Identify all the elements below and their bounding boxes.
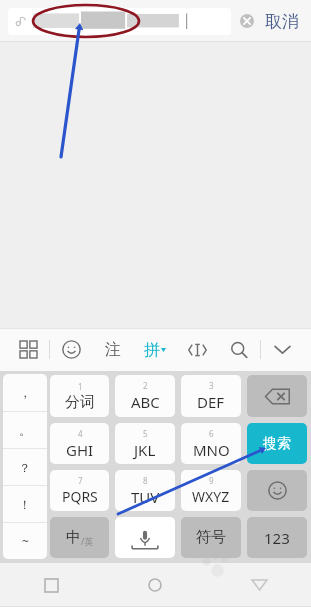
- button[interactable]: 拼: [134, 328, 176, 371]
- staticText: 123: [264, 528, 290, 548]
- button[interactable]: Backspace: [247, 375, 307, 417]
- staticText: 搜索: [263, 435, 291, 453]
- button[interactable]: 中: [50, 517, 109, 558]
- button[interactable]: 1: [50, 375, 109, 417]
- staticText: MNO: [193, 440, 230, 460]
- staticText: 中: [66, 528, 81, 547]
- staticText: 注: [105, 340, 121, 360]
- button[interactable]: 搜索: [247, 423, 307, 464]
- staticText: 6: [209, 428, 214, 439]
- staticText: ！: [19, 497, 31, 512]
- staticText: 分词: [65, 393, 95, 412]
- button[interactable]: 6: [181, 423, 241, 464]
- staticText: 4: [78, 428, 83, 439]
- button[interactable]: 4: [50, 423, 109, 464]
- button[interactable]: ~: [3, 523, 47, 559]
- button[interactable]: Voice input: [115, 517, 175, 558]
- button[interactable]: 3: [181, 375, 241, 417]
- staticText: 。: [19, 423, 31, 438]
- button[interactable]: 5: [115, 423, 175, 464]
- button[interactable]: Emoji: [50, 328, 92, 371]
- button[interactable]: 123: [247, 517, 307, 558]
- button[interactable]: 取消: [261, 6, 303, 37]
- button[interactable]: 注: [92, 328, 134, 371]
- staticText: 9: [209, 475, 214, 486]
- button[interactable]: 7: [50, 470, 109, 511]
- staticText: DEF: [197, 392, 225, 412]
- staticText: TUV: [131, 487, 160, 507]
- button[interactable]: 符号: [181, 517, 241, 558]
- staticText: /英: [81, 535, 94, 547]
- staticText: GHI: [66, 440, 94, 460]
- staticText: 2: [143, 380, 148, 391]
- button[interactable]: Home: [103, 563, 207, 607]
- button[interactable]: Clear text: [236, 10, 258, 32]
- button[interactable]: 。: [3, 412, 47, 448]
- staticText: PQRS: [62, 487, 98, 506]
- button[interactable]: Hide keyboard: [261, 328, 303, 371]
- staticText: 3: [209, 380, 214, 391]
- button[interactable]: Emoji: [247, 470, 307, 511]
- button[interactable]: ？: [3, 449, 47, 485]
- button[interactable]: [8, 8, 231, 35]
- staticText: 取消: [265, 11, 299, 32]
- button[interactable]: 9: [181, 470, 241, 511]
- button[interactable]: ！: [3, 486, 47, 522]
- staticText: ？: [19, 460, 31, 475]
- staticText: 7: [78, 475, 83, 486]
- staticText: 拼: [144, 340, 160, 360]
- button[interactable]: Search: [218, 328, 260, 371]
- button[interactable]: Keyboard layouts: [8, 328, 49, 371]
- button[interactable]: 2: [115, 375, 175, 417]
- staticText: ，: [19, 385, 31, 400]
- staticText: JKL: [134, 440, 156, 460]
- staticText: 5: [143, 428, 148, 439]
- staticText: ~: [22, 533, 29, 549]
- button[interactable]: Cursor controls: [176, 328, 218, 371]
- staticText: 8: [143, 475, 148, 486]
- button[interactable]: Back: [207, 563, 311, 607]
- staticText: 1: [78, 381, 83, 392]
- button[interactable]: Recents: [0, 563, 103, 607]
- staticText: 符号: [196, 528, 226, 547]
- button[interactable]: 8: [115, 470, 175, 511]
- staticText: ABC: [131, 392, 160, 412]
- button[interactable]: ，: [3, 374, 47, 411]
- staticText: WXYZ: [192, 487, 230, 506]
